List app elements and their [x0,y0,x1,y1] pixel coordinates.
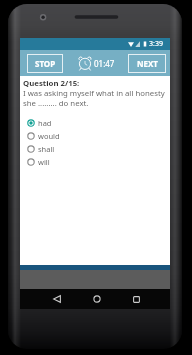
staticText: shall [38,144,55,154]
staticText: I was asking myself what in all honesty … [23,88,165,108]
button[interactable]: Home [87,289,107,309]
button[interactable]: Recents [126,289,146,309]
button[interactable]: shall [27,142,83,155]
button[interactable]: Back [47,289,67,309]
button[interactable]: will [27,155,83,168]
staticText: NEXT [137,58,158,69]
staticText: 01:47 [94,58,115,69]
button[interactable]: NEXT [128,54,166,73]
staticText: had [38,118,52,128]
staticText: STOP [35,58,56,69]
button[interactable]: had [27,116,83,129]
staticText: would [38,131,60,141]
button[interactable]: STOP [27,54,63,73]
staticText: Question 2/15: [23,78,80,89]
staticText: 3:39 [149,39,163,49]
button[interactable]: would [27,129,83,142]
staticText: will [38,157,50,167]
other: Timer [78,56,92,70]
